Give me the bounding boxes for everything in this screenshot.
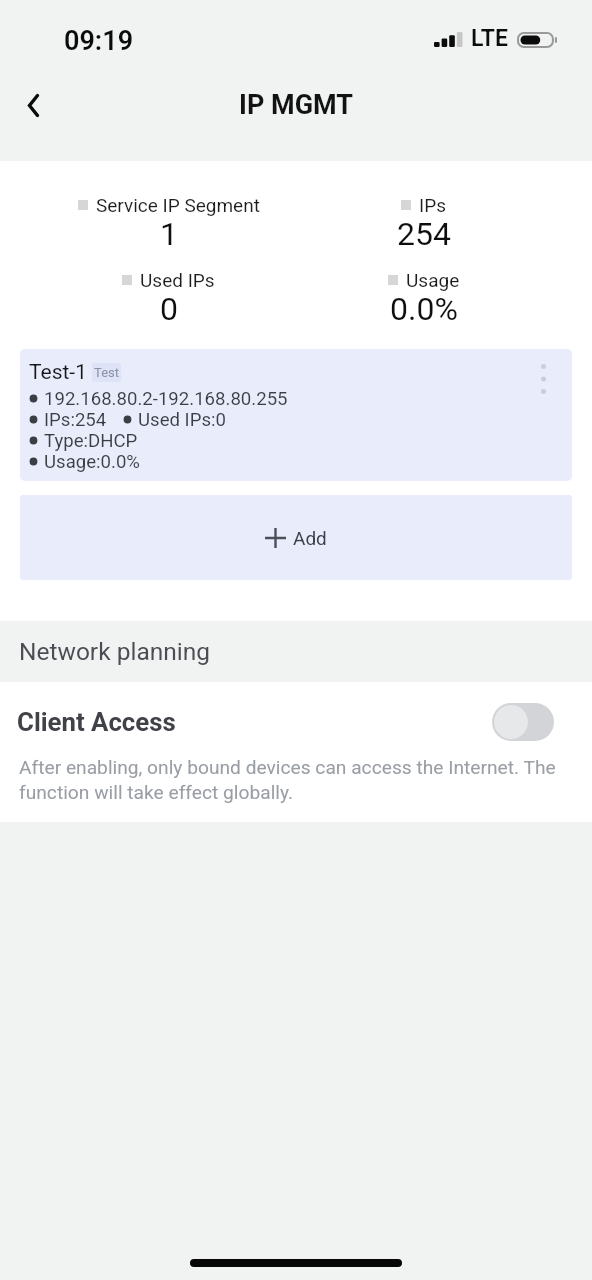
staticText: Usage [406, 269, 460, 291]
staticText: 09:19 [64, 25, 134, 57]
button[interactable]: More options [533, 360, 553, 398]
staticText: 0.0% [390, 290, 458, 324]
staticText: 192.168.80.2-192.168.80.255 [44, 388, 288, 409]
staticText: Usage:0.0% [44, 451, 140, 472]
staticText: After enabling, only bound devices can a… [19, 756, 584, 803]
staticText: Test [94, 365, 119, 380]
staticText: 254 [397, 215, 451, 249]
button[interactable]: Back [5, 77, 61, 133]
staticText: Used IPs [140, 269, 215, 291]
button[interactable]: Add [20, 495, 572, 580]
button[interactable]: Client Access toggle [492, 703, 554, 741]
staticText: IPs [419, 194, 446, 216]
button[interactable]: Test-1 [20, 349, 572, 481]
staticText: Type:DHCP [44, 430, 138, 451]
staticText: 1 [160, 215, 178, 249]
staticText: Network planning [19, 637, 211, 666]
staticText: IPs:254 [44, 409, 107, 430]
button[interactable]: Client Access [0, 682, 592, 803]
staticText: Service IP Segment [96, 194, 260, 216]
staticText: Add [293, 527, 327, 549]
staticText: 0 [160, 290, 178, 324]
staticText: IP MGMT [239, 89, 354, 121]
staticText: Used IPs:0 [138, 409, 226, 430]
staticText: Client Access [17, 707, 492, 737]
staticText: LTE [471, 25, 508, 52]
staticText: Test-1 [29, 360, 87, 385]
